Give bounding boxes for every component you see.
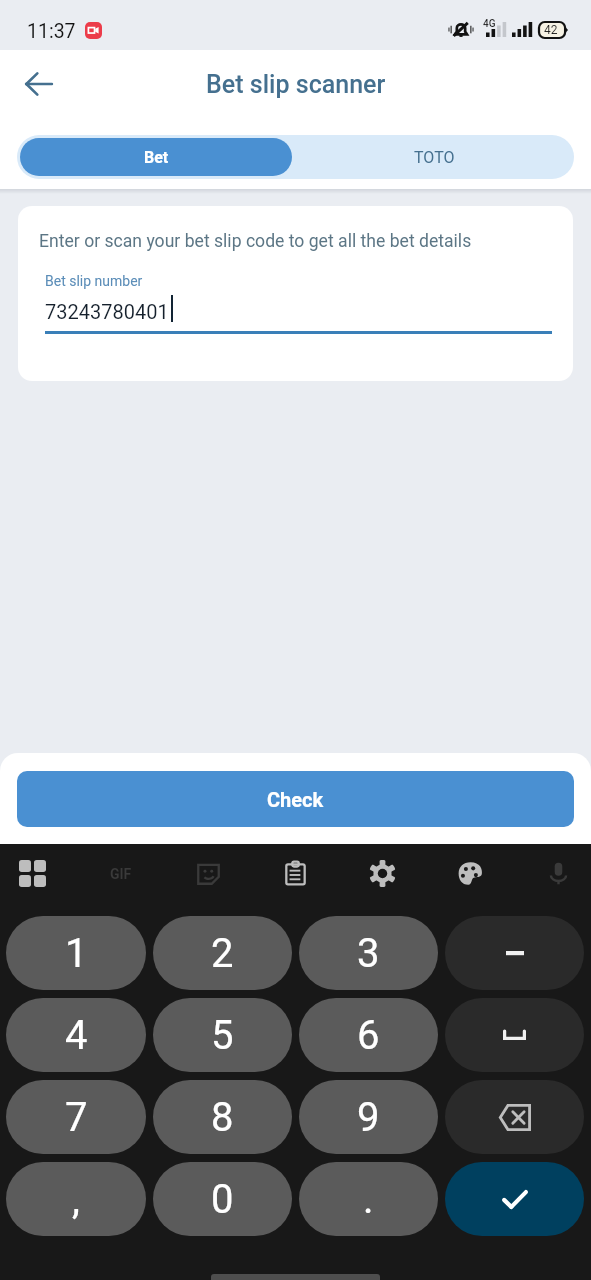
button[interactable]: Bet <box>20 138 292 176</box>
staticText: . <box>363 1176 374 1223</box>
button[interactable]: 2 <box>153 916 292 990</box>
staticText: 8 <box>211 1094 234 1141</box>
button[interactable]: DASH <box>445 916 584 990</box>
button[interactable]: 1 <box>6 916 146 990</box>
staticText: Bet slip number <box>45 273 143 289</box>
staticText: 6 <box>357 1012 380 1059</box>
button[interactable]: SPACE <box>445 998 584 1072</box>
staticText: Enter or scan your bet slip code to get … <box>39 231 472 252</box>
button[interactable]: 4 <box>6 998 146 1072</box>
button[interactable]: 9 <box>299 1080 438 1154</box>
staticText: GIF <box>110 866 132 882</box>
staticText: TOTO <box>414 148 455 167</box>
staticText: 9 <box>357 1094 380 1141</box>
button[interactable]: Theme <box>446 849 494 897</box>
button[interactable]: 6 <box>299 998 438 1072</box>
button[interactable]: CHECK <box>445 1162 584 1236</box>
button[interactable]: Stickers <box>184 849 232 897</box>
staticText: 1 <box>65 930 88 977</box>
button[interactable]: , <box>6 1162 146 1236</box>
staticText: 73243780401 <box>45 300 169 323</box>
button[interactable]: Back <box>14 59 64 109</box>
staticText: Check <box>267 788 324 811</box>
button[interactable]: 7 <box>6 1080 146 1154</box>
button[interactable]: Voice input <box>534 849 582 897</box>
staticText: 11:37 <box>27 20 76 43</box>
staticText: 3 <box>357 930 380 977</box>
button[interactable]: Settings <box>358 849 406 897</box>
button[interactable]: Check <box>17 771 574 827</box>
staticText: 4G <box>483 18 496 30</box>
button[interactable]: BACKSPACE <box>445 1080 584 1154</box>
button[interactable]: TOTO <box>295 135 574 179</box>
staticText: , <box>72 1176 80 1223</box>
staticText: Bet <box>144 148 169 167</box>
staticText: Bet slip scanner <box>206 70 386 99</box>
staticText: 4 <box>65 1012 88 1059</box>
staticText: 7 <box>65 1094 88 1141</box>
button[interactable]: 3 <box>299 916 438 990</box>
staticText: 5 <box>211 1012 234 1059</box>
button[interactable]: Clipboard <box>271 849 319 897</box>
staticText: 0 <box>211 1176 234 1223</box>
button[interactable]: 8 <box>153 1080 292 1154</box>
button[interactable]: Apps <box>8 849 56 897</box>
staticText: 2 <box>211 930 234 977</box>
button[interactable]: 5 <box>153 998 292 1072</box>
button[interactable]: 0 <box>153 1162 292 1236</box>
button[interactable]: GIF <box>96 849 144 897</box>
staticText: 42 <box>544 23 558 37</box>
button[interactable]: . <box>299 1162 438 1236</box>
